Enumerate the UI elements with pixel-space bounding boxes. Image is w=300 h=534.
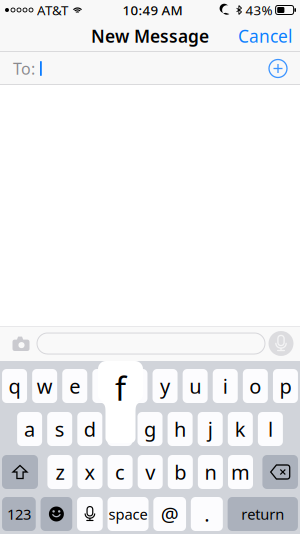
- staticText: @: [161, 501, 179, 527]
- staticText: i: [223, 373, 228, 399]
- staticText: .: [204, 501, 209, 527]
- staticText: c: [115, 459, 125, 485]
- staticText: m: [231, 459, 250, 485]
- staticText: 123: [7, 504, 31, 524]
- button[interactable]: f: [107, 412, 132, 446]
- staticText: l: [268, 416, 273, 442]
- button[interactable]: @: [153, 497, 186, 531]
- button[interactable]: Camera: [5, 327, 37, 359]
- button[interactable]: y: [153, 369, 178, 403]
- button[interactable]: c: [108, 455, 133, 489]
- button[interactable]: b: [168, 455, 193, 489]
- button[interactable]: return: [228, 497, 298, 531]
- staticText: u: [189, 373, 201, 399]
- staticText: n: [204, 459, 216, 485]
- staticText: space: [108, 504, 147, 524]
- staticText: v: [145, 459, 155, 485]
- staticText: New Message: [91, 24, 209, 47]
- button[interactable]: n: [198, 455, 223, 489]
- button[interactable]: i: [213, 369, 238, 403]
- button[interactable]: Record audio message: [265, 327, 297, 359]
- staticText: w: [37, 373, 53, 399]
- staticText: Cancel: [238, 24, 292, 47]
- staticText: f: [115, 367, 126, 409]
- button[interactable]: g: [137, 412, 162, 446]
- staticText: q: [9, 373, 21, 399]
- button[interactable]: p: [273, 369, 298, 403]
- staticText: e: [69, 373, 80, 399]
- staticText: 10:49 AM: [122, 1, 182, 19]
- button[interactable]: r: [92, 369, 117, 403]
- button[interactable]: v: [138, 455, 163, 489]
- button[interactable]: a: [17, 412, 42, 446]
- staticText: To:: [13, 58, 35, 79]
- button[interactable]: .: [191, 497, 223, 531]
- staticText: return: [241, 504, 284, 524]
- button[interactable]: Delete: [262, 455, 298, 489]
- button[interactable]: Dictation: [77, 497, 103, 531]
- staticText: k: [235, 416, 246, 442]
- staticText: s: [55, 416, 65, 442]
- button[interactable]: Shift: [2, 455, 38, 489]
- button[interactable]: k: [228, 412, 253, 446]
- button[interactable]: m: [228, 455, 253, 489]
- button[interactable]: space: [107, 497, 148, 531]
- button[interactable]: s: [47, 412, 72, 446]
- button[interactable]: d: [77, 412, 102, 446]
- button[interactable]: o: [243, 369, 268, 403]
- staticText: j: [208, 416, 213, 442]
- button[interactable]: x: [77, 455, 102, 489]
- staticText: o: [249, 373, 261, 399]
- button[interactable]: Add contact: [262, 52, 294, 84]
- button[interactable]: Emoji: [40, 497, 72, 531]
- button[interactable]: w: [32, 369, 57, 403]
- button[interactable]: h: [168, 412, 193, 446]
- button[interactable]: z: [47, 455, 72, 489]
- staticText: g: [144, 416, 156, 442]
- button[interactable]: l: [258, 412, 283, 446]
- staticText: z: [55, 459, 64, 485]
- staticText: b: [174, 459, 186, 485]
- staticText: y: [160, 373, 170, 399]
- staticText: d: [84, 416, 96, 442]
- staticText: AT&T: [37, 1, 68, 19]
- staticText: h: [174, 416, 186, 442]
- button[interactable]: u: [183, 369, 208, 403]
- button[interactable]: t: [122, 369, 147, 403]
- button[interactable]: j: [198, 412, 223, 446]
- staticText: x: [84, 459, 95, 485]
- button[interactable]: Cancel: [230, 20, 300, 52]
- button[interactable]: q: [2, 369, 27, 403]
- button[interactable]: e: [62, 369, 87, 403]
- staticText: p: [279, 373, 291, 399]
- staticText: a: [24, 416, 35, 442]
- button[interactable]: 123: [2, 497, 36, 531]
- staticText: 43%: [246, 1, 273, 19]
